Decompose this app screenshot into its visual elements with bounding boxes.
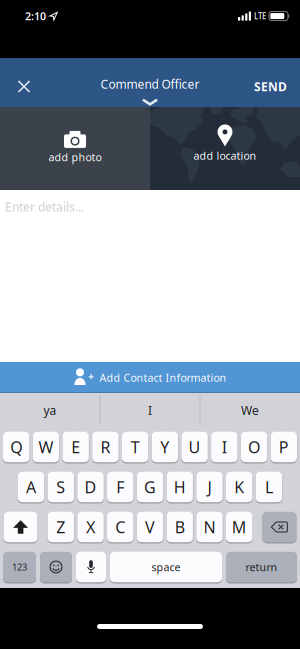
button[interactable]: + xyxy=(0,362,300,393)
button[interactable]: We xyxy=(200,391,300,430)
staticText: add photo xyxy=(48,150,101,164)
staticText: V xyxy=(145,516,155,538)
staticText: ya xyxy=(43,402,56,418)
staticText: N xyxy=(203,516,215,538)
button[interactable]: S xyxy=(48,472,74,502)
staticText: C xyxy=(115,516,125,538)
staticText: Enter details... xyxy=(5,199,84,215)
button[interactable]: Y xyxy=(152,432,178,462)
staticText: L xyxy=(265,476,273,498)
button[interactable]: J xyxy=(196,472,223,502)
button[interactable]: I xyxy=(100,391,200,430)
button[interactable]: P xyxy=(271,432,297,462)
staticText: I xyxy=(148,402,152,418)
staticText: W xyxy=(38,436,53,458)
button[interactable]: F xyxy=(107,472,133,502)
staticText: P xyxy=(279,436,289,458)
staticText: X xyxy=(86,516,95,538)
staticText: space xyxy=(151,560,180,574)
staticText: Z xyxy=(56,516,65,538)
button[interactable]: space xyxy=(110,552,222,582)
staticText: We xyxy=(241,402,259,418)
button[interactable]: ya xyxy=(0,391,100,430)
staticText: Commend Officer xyxy=(100,76,199,92)
staticText: U xyxy=(189,436,201,458)
button[interactable]: Dictation xyxy=(76,552,106,582)
staticText: Add Contact Information xyxy=(99,370,226,385)
button[interactable]: A xyxy=(18,472,44,502)
staticText: 123 xyxy=(12,561,27,573)
staticText: M xyxy=(232,516,247,538)
button[interactable]: O xyxy=(241,432,267,462)
staticText: E xyxy=(71,436,80,458)
button[interactable]: X xyxy=(77,512,104,542)
button[interactable]: K xyxy=(226,472,252,502)
button[interactable]: add location xyxy=(150,107,300,190)
button[interactable]: I xyxy=(211,432,237,462)
button[interactable]: T xyxy=(122,432,148,462)
staticText: H xyxy=(174,476,186,498)
staticText: G xyxy=(144,476,156,498)
staticText: K xyxy=(234,476,244,498)
staticText: Q xyxy=(10,436,22,458)
button[interactable]: R xyxy=(92,432,119,462)
button[interactable]: SEND xyxy=(254,68,300,104)
button[interactable]: C xyxy=(107,512,133,542)
staticText: + xyxy=(88,369,94,383)
staticText: D xyxy=(84,476,96,498)
button[interactable]: G xyxy=(137,472,163,502)
button[interactable]: Delete xyxy=(263,512,296,542)
staticText: J xyxy=(207,476,211,498)
staticText: Y xyxy=(160,436,169,458)
staticText: I xyxy=(222,436,227,458)
button[interactable]: Shift xyxy=(4,512,37,542)
staticText: A xyxy=(26,476,36,498)
button[interactable]: N xyxy=(196,512,223,542)
button[interactable]: V xyxy=(137,512,163,542)
staticText: F xyxy=(116,476,124,498)
staticText: return xyxy=(245,560,277,574)
staticText: 2:10 xyxy=(25,9,46,23)
staticText: SEND xyxy=(254,78,287,94)
button[interactable]: return xyxy=(226,552,297,582)
button[interactable]: L xyxy=(256,472,282,502)
button[interactable]: add photo xyxy=(0,107,150,190)
button[interactable]: E xyxy=(62,432,89,462)
button[interactable]: Close xyxy=(0,70,30,102)
staticText: R xyxy=(100,436,110,458)
button[interactable]: 123 xyxy=(3,552,36,582)
staticText: O xyxy=(248,436,260,458)
button[interactable]: B xyxy=(166,512,193,542)
staticText: B xyxy=(175,516,185,538)
staticText: add location xyxy=(193,148,256,163)
button[interactable]: Emoji xyxy=(40,552,72,582)
staticText: LTE xyxy=(254,11,266,21)
button[interactable]: H xyxy=(166,472,193,502)
button[interactable]: M xyxy=(226,512,252,542)
button[interactable]: Q xyxy=(3,432,29,462)
staticText: T xyxy=(131,436,140,458)
button[interactable]: U xyxy=(181,432,208,462)
button[interactable]: W xyxy=(33,432,59,462)
staticText: S xyxy=(56,476,65,498)
button[interactable]: D xyxy=(77,472,104,502)
button[interactable]: Z xyxy=(48,512,74,542)
